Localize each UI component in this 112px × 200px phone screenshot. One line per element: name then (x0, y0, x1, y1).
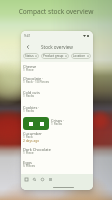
button[interactable]: Product group (41, 53, 69, 59)
staticText: Eggs (23, 160, 32, 165)
staticText: Dark Chocolate (23, 147, 51, 152)
button[interactable]: Dark Chocolate (21, 146, 93, 159)
staticText: 2 days ago (23, 139, 40, 143)
staticText: Location (73, 54, 86, 58)
button[interactable]: Status (23, 53, 39, 59)
staticText: Product group (43, 54, 64, 58)
staticText: 5 Pieces (23, 164, 36, 168)
staticText: Cookies · (23, 105, 40, 110)
staticText: 9:41 (24, 34, 31, 38)
button[interactable]: Cucumber (21, 130, 93, 146)
button[interactable]: Stock (23, 176, 30, 183)
staticText: 1 Pack (23, 135, 33, 139)
staticText: Compact stock overview (0, 7, 112, 16)
staticText: 1 Packs (23, 94, 35, 98)
button[interactable]: Search (31, 176, 38, 183)
button[interactable]: Shopping list (39, 176, 46, 183)
staticText: Cucumber (23, 131, 42, 136)
button[interactable]: Eggs (21, 159, 93, 172)
staticText: 1 Packs (23, 109, 35, 113)
button[interactable]: Chocolate · (21, 75, 93, 89)
button[interactable]: Consume (26, 119, 35, 128)
staticText: Cold cuts (23, 90, 40, 95)
staticText: Chocolate · (23, 76, 44, 81)
button[interactable]: Location (71, 53, 91, 59)
button[interactable]: Cookies · (21, 104, 93, 115)
staticText: Crisps · (51, 118, 65, 123)
staticText: Status (25, 54, 34, 58)
button[interactable]: Cheese (21, 63, 93, 75)
button[interactable]: Back (22, 41, 33, 52)
staticText: Cheese (23, 64, 37, 69)
staticText: 1 Piece (23, 151, 34, 155)
staticText: 1 Piece (23, 68, 34, 72)
staticText: Stock overview (21, 44, 93, 50)
staticText: 1 Packs (51, 122, 63, 126)
button[interactable]: More (47, 176, 54, 183)
button[interactable]: Cold cuts (21, 89, 93, 104)
staticText: 1 Pack · 10 Pieces (23, 80, 49, 84)
button[interactable]: Open (37, 119, 46, 128)
